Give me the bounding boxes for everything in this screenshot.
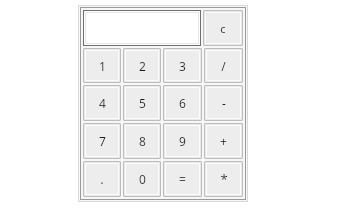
button[interactable]: 7 (83, 123, 121, 159)
button[interactable]: 4 (83, 85, 121, 121)
button[interactable]: 5 (123, 85, 161, 121)
button[interactable]: 9 (163, 123, 202, 159)
button[interactable]: . (83, 161, 121, 197)
staticText: 9 (179, 133, 186, 149)
button[interactable] (85, 12, 199, 44)
staticText: 6 (179, 95, 186, 111)
button[interactable]: 3 (163, 48, 202, 83)
staticText: 1 (99, 58, 106, 74)
staticText: / (221, 58, 226, 74)
staticText: 2 (139, 58, 146, 74)
staticText: = (179, 171, 186, 187)
button[interactable]: = (163, 161, 202, 197)
staticText: . (100, 170, 104, 188)
button[interactable]: 0 (123, 161, 161, 197)
staticText: 8 (139, 133, 146, 149)
staticText: 5 (139, 95, 146, 111)
button[interactable]: - (204, 85, 243, 121)
button[interactable]: * (204, 161, 243, 197)
button[interactable]: c (203, 10, 243, 46)
button[interactable]: + (204, 123, 243, 159)
button[interactable]: / (204, 48, 243, 83)
staticText: c (220, 21, 226, 36)
button[interactable]: 8 (123, 123, 161, 159)
staticText: 4 (99, 95, 106, 111)
staticText: - (222, 95, 226, 111)
staticText: * (220, 170, 228, 188)
button[interactable]: 6 (163, 85, 202, 121)
staticText: 7 (99, 133, 106, 149)
button[interactable]: 2 (123, 48, 161, 83)
button[interactable]: 1 (83, 48, 121, 83)
staticText: 0 (139, 171, 146, 187)
staticText: + (220, 133, 227, 149)
staticText: 3 (179, 58, 186, 74)
